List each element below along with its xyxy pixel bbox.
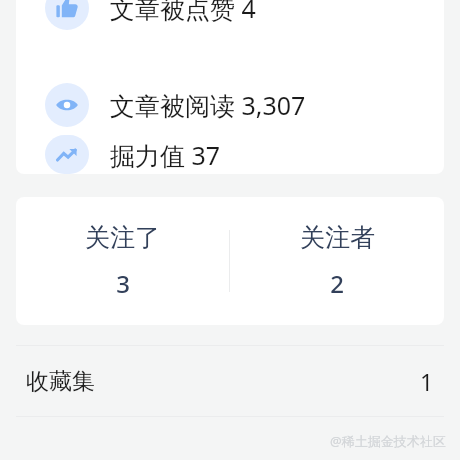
button[interactable]: Views [16,75,444,135]
button[interactable]: 关注了 [16,197,229,325]
staticText: 文章被点赞 4 [110,0,256,25]
staticText: 关注了 [85,222,160,253]
staticText: 文章被阅读 3,307 [110,88,306,122]
staticText: 关注者 [300,222,375,253]
button[interactable]: 收藏集 [0,346,460,416]
button[interactable]: Likes [16,0,444,38]
other: Likes [45,0,89,30]
button[interactable]: 关注者 [230,197,444,325]
other: Views [45,83,89,127]
staticText: 3 [116,267,130,300]
staticText: 掘力值 37 [110,138,221,172]
staticText: 1 [420,366,434,397]
staticText: 收藏集 [26,367,95,396]
staticText: 2 [330,267,344,300]
other: Power value [45,135,89,174]
staticText: @稀土掘金技术社区 [330,432,446,450]
button[interactable]: Power value [16,135,444,174]
